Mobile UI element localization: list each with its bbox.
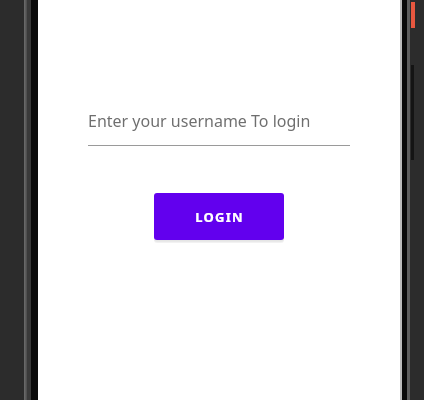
staticText: LOGIN <box>195 208 244 226</box>
staticText: Enter your username To login <box>88 110 311 132</box>
button[interactable]: Enter your username To login <box>88 110 350 146</box>
button[interactable]: LOGIN <box>154 193 284 240</box>
